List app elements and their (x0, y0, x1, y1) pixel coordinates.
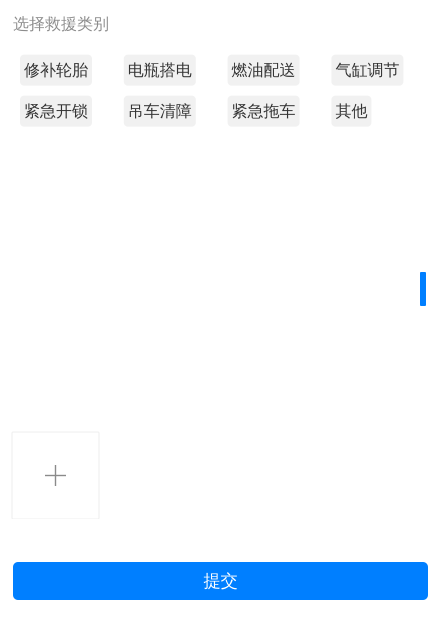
button[interactable]: 紧急开锁 (20, 96, 92, 127)
staticText: 气缸调节 (335, 60, 399, 80)
button[interactable]: 电瓶搭电 (124, 55, 196, 86)
button[interactable]: 其他 (331, 96, 371, 127)
staticText: 燃油配送 (232, 60, 296, 80)
button[interactable]: 吊车清障 (124, 96, 196, 127)
button[interactable]: 气缸调节 (331, 55, 403, 86)
button[interactable]: 修补轮胎 (20, 55, 92, 86)
staticText: 其他 (335, 101, 367, 121)
staticText: 电瓶搭电 (128, 60, 192, 80)
button[interactable]: 提交 (13, 562, 428, 600)
button[interactable]: 添加照片 (12, 432, 99, 519)
button[interactable]: 燃油配送 (228, 55, 300, 86)
staticText: 修补轮胎 (24, 60, 88, 80)
staticText: 紧急拖车 (232, 101, 296, 121)
staticText: 紧急开锁 (24, 101, 88, 121)
button[interactable]: 紧急拖车 (228, 96, 300, 127)
staticText: 吊车清障 (128, 101, 192, 121)
staticText: 选择救援类别 (13, 14, 109, 34)
staticText: 提交 (203, 570, 237, 592)
